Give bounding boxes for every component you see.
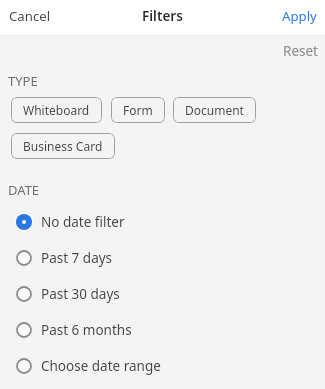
button[interactable]: Past 6 months [0,312,325,348]
button[interactable]: Past 30 days [0,276,325,312]
staticText: DATE [8,181,40,199]
staticText: Reset [283,42,318,60]
staticText: Past 7 days [41,249,113,267]
staticText: Document [185,102,244,118]
staticText: Past 30 days [41,285,120,303]
staticText: Form [123,102,153,118]
staticText: Cancel [9,7,51,24]
staticText: No date filter [41,213,125,231]
button[interactable]: Form [111,97,165,123]
staticText: TYPE [8,72,38,90]
staticText: Business Card [23,138,103,154]
button[interactable]: Choose date range [0,348,325,384]
staticText: Past 6 months [41,321,132,339]
staticText: Apply [282,7,317,24]
staticText: Whiteboard [23,102,90,118]
button[interactable]: No date filter [0,204,325,240]
button[interactable]: Cancel [0,0,60,31]
staticText: Choose date range [41,357,161,375]
button[interactable]: Apply [274,0,325,31]
button[interactable]: Past 7 days [0,240,325,276]
button[interactable]: Document [173,97,256,123]
staticText: Filters [142,7,183,25]
button[interactable]: Business Card [11,133,115,159]
button[interactable]: Reset [276,38,325,64]
button[interactable]: Whiteboard [11,97,102,123]
